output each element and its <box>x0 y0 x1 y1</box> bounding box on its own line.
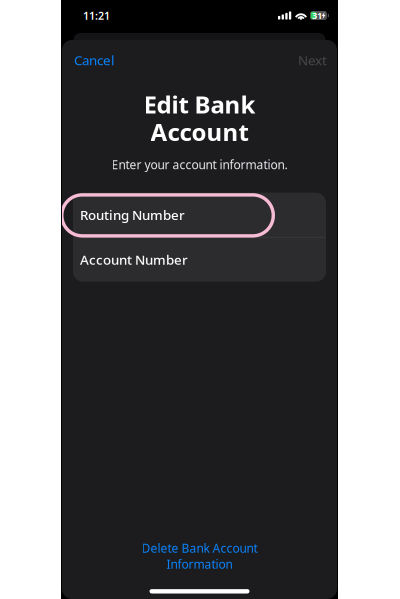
staticText: Next <box>298 51 327 69</box>
staticText: Edit Bank <box>143 88 255 120</box>
staticText: Cancel <box>74 51 114 69</box>
button[interactable]: Cancel <box>61 40 127 80</box>
button[interactable]: Account Number <box>73 238 326 282</box>
staticText: Routing Number <box>80 206 185 224</box>
staticText: Delete Bank Account <box>141 540 257 556</box>
staticText: Enter your account information. <box>111 157 287 173</box>
staticText: Information <box>166 556 232 572</box>
staticText: 11:21 <box>83 8 110 23</box>
button[interactable]: Next <box>286 40 338 80</box>
staticText: Account Number <box>80 251 188 268</box>
button[interactable]: Delete Bank Account <box>117 536 281 576</box>
staticText: 31 <box>312 9 322 22</box>
button[interactable]: Routing Number <box>73 193 326 237</box>
staticText: Account <box>150 116 248 148</box>
